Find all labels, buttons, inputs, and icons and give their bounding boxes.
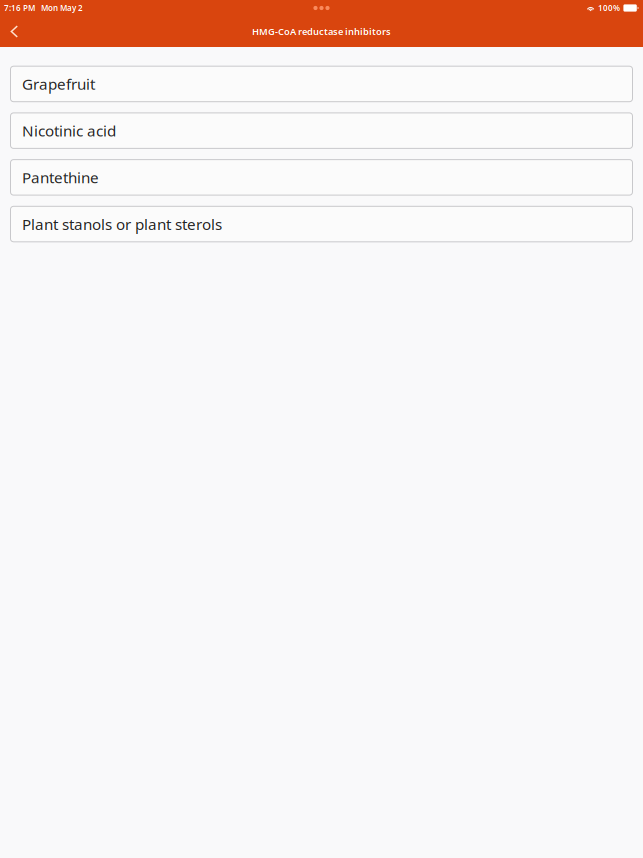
button[interactable]: Grapefruit	[10, 66, 632, 102]
button[interactable]: Plant stanols or plant sterols	[10, 206, 632, 242]
button[interactable]: Nicotinic acid	[10, 113, 632, 148]
staticText: Nicotinic acid	[22, 120, 116, 141]
staticText: Grapefruit	[22, 74, 95, 94]
button[interactable]: Back	[0, 16, 28, 47]
staticText: Plant stanols or plant sterols	[22, 214, 222, 234]
staticText: Pantethine	[22, 167, 99, 188]
staticText: Mon May 2	[35, 3, 83, 13]
staticText: HMG-CoA reductase inhibitors	[252, 25, 391, 38]
staticText: 7:16 PM	[4, 3, 35, 13]
button[interactable]: Pantethine	[10, 160, 632, 195]
staticText: 100%	[598, 3, 620, 13]
